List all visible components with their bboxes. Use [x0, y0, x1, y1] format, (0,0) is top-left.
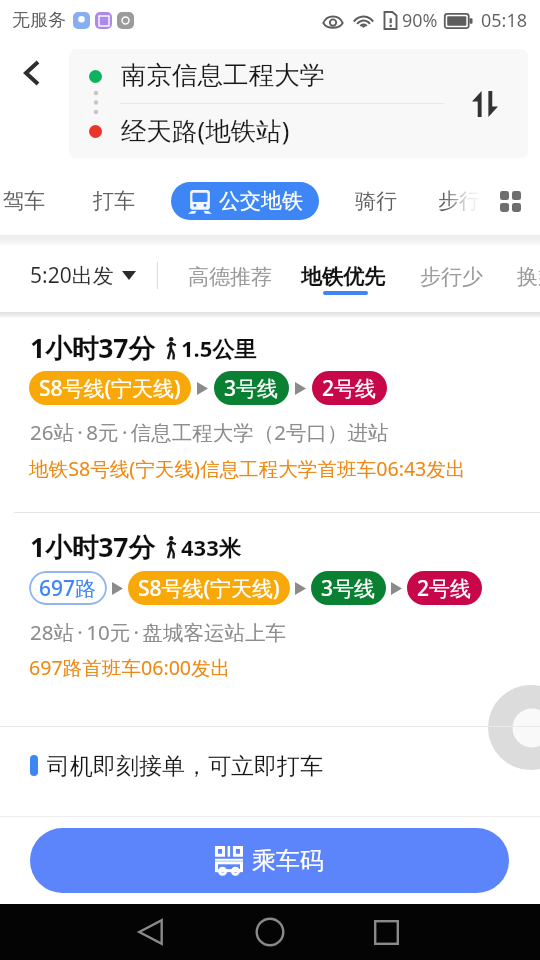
staticText: 步行	[438, 188, 480, 214]
staticText: 步行少	[420, 264, 483, 290]
staticText: 高德推荐	[188, 264, 272, 290]
button[interactable]: Recent apps	[362, 908, 410, 956]
button[interactable]: Floating shortcut	[488, 685, 540, 771]
button[interactable]: 1小时37分	[0, 314, 540, 512]
staticText: 90%	[402, 8, 438, 33]
staticText: S8号线(宁天线)	[39, 374, 181, 403]
staticText: 1小时37分	[30, 330, 155, 366]
button[interactable]: 换乘	[517, 252, 540, 300]
staticText: 骑行	[355, 188, 397, 214]
staticText: 26站 · 8元 · 信息工程大学（2号口）进站	[30, 418, 389, 446]
button[interactable]: 驾车	[3, 182, 49, 220]
staticText: 驾车	[3, 188, 45, 214]
button[interactable]: Back	[126, 908, 174, 956]
staticText: 1.5公里	[181, 333, 257, 363]
button[interactable]: 步行少	[420, 252, 483, 300]
staticText: 公交地铁	[219, 188, 303, 214]
button[interactable]: Home	[246, 908, 294, 956]
staticText: 地铁S8号线(宁天线)信息工程大学首班车06:43发出	[29, 455, 466, 482]
staticText: 3号线	[224, 374, 279, 403]
staticText: 2号线	[417, 574, 472, 603]
staticText: 3号线	[321, 574, 376, 603]
button[interactable]: 1小时37分	[0, 513, 540, 726]
button[interactable]: 步行	[438, 182, 484, 220]
button[interactable]: 5:20出发	[30, 254, 136, 296]
staticText: 1小时37分	[30, 529, 155, 565]
staticText: 28站 · 10元 · 盘城客运站上车	[30, 618, 287, 646]
staticText: 697路	[39, 574, 97, 603]
staticText: 南京信息工程大学	[121, 59, 325, 91]
button[interactable]: 南京信息工程大学	[69, 49, 528, 158]
staticText: S8号线(宁天线)	[138, 574, 280, 603]
staticText: 经天路(地铁站)	[121, 113, 290, 148]
staticText: 换乘	[517, 264, 540, 290]
staticText: 05:18	[481, 8, 528, 33]
staticText: 地铁优先	[301, 264, 385, 290]
staticText: 打车	[93, 188, 135, 214]
button[interactable]: 骑行	[355, 182, 401, 220]
button[interactable]: Back	[6, 51, 58, 95]
button[interactable]: 地铁优先	[301, 252, 385, 300]
button[interactable]: 乘车码	[30, 828, 509, 893]
staticText: 697路首班车06:00发出	[29, 654, 231, 681]
staticText: 2号线	[322, 374, 377, 403]
button[interactable]: 高德推荐	[188, 252, 272, 300]
staticText: 乘车码	[252, 846, 324, 876]
button[interactable]: 司机即刻接单，可立即打车	[0, 727, 540, 816]
staticText: 433米	[181, 532, 241, 562]
staticText: 5:20出发	[30, 261, 114, 290]
staticText: 司机即刻接单，可立即打车	[47, 752, 323, 781]
button[interactable]: 公交地铁	[171, 182, 319, 220]
button[interactable]: 打车	[93, 182, 139, 220]
button[interactable]: All transport modes	[488, 179, 532, 223]
staticText: 无服务	[12, 9, 66, 32]
button[interactable]: Swap origin and destination	[462, 81, 508, 127]
